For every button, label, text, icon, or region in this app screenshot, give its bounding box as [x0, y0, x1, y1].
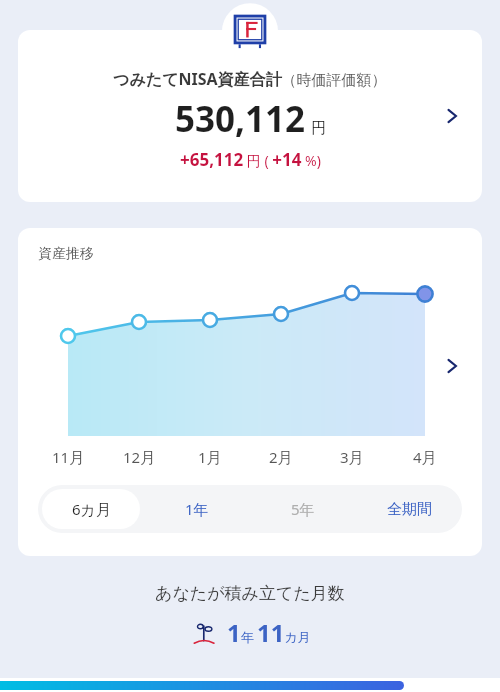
button[interactable]: 資産合計の詳細を見る	[434, 98, 470, 134]
button[interactable]: 6カ月	[42, 489, 140, 529]
staticText: 12月	[123, 447, 156, 467]
staticText: 5年	[291, 499, 315, 519]
staticText: 1月	[198, 447, 222, 467]
staticText: あなたが積み立てた月数	[155, 583, 345, 604]
staticText: 530,112	[175, 95, 306, 143]
staticText: 2月	[269, 447, 293, 467]
button[interactable]: 5年	[254, 489, 352, 529]
staticText: 11月	[52, 447, 85, 467]
staticText: +65,112 円 ( +14 %)	[180, 148, 321, 171]
staticText: つみたてNISA資産合計（時価評価額）	[113, 68, 387, 90]
button[interactable]: 資産推移の詳細を見る	[434, 348, 470, 384]
staticText: 4月	[413, 447, 437, 467]
button[interactable]: つみたてNISA資産合計（時価評価額）	[18, 30, 482, 202]
staticText: 3月	[340, 447, 364, 467]
staticText: 1年	[185, 499, 209, 519]
button[interactable]: 全期間	[360, 489, 458, 529]
staticText: 全期間	[387, 500, 432, 519]
staticText: 6カ月	[72, 499, 111, 519]
button[interactable]	[18, 283, 482, 442]
staticText: 1年 11カ月	[227, 616, 311, 649]
button[interactable]: 1年	[148, 489, 246, 529]
staticText: 資産推移	[38, 245, 94, 263]
staticText: 円	[311, 119, 326, 138]
